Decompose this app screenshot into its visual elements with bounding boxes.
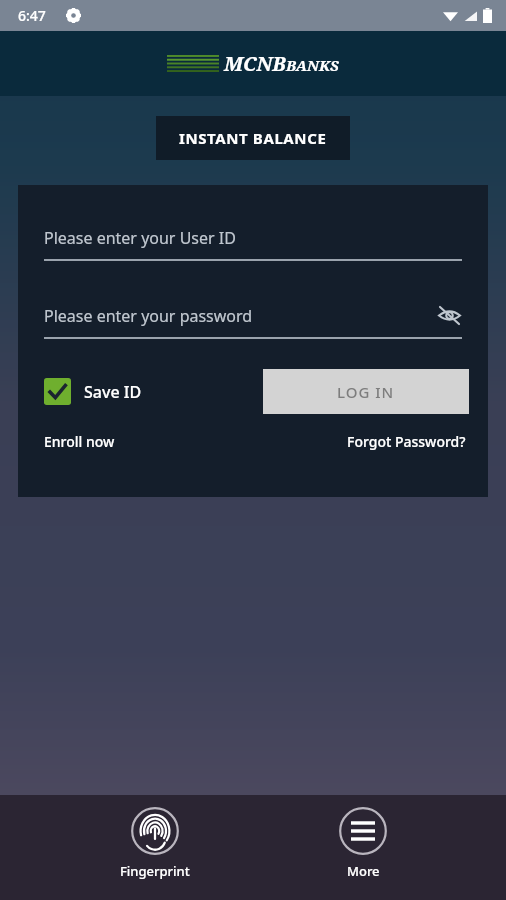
- staticText: Forgot Password?: [347, 432, 466, 451]
- other: More: [339, 807, 387, 855]
- staticText: More: [347, 862, 380, 880]
- staticText: INSTANT BALANCE: [179, 128, 327, 148]
- staticText: MCNB: [224, 50, 286, 77]
- staticText: BANKS: [286, 55, 339, 75]
- other: Fingerprint: [131, 807, 179, 855]
- button[interactable]: Enroll now: [44, 432, 115, 451]
- button[interactable]: INSTANT BALANCE: [156, 116, 350, 160]
- button[interactable]: Please enter your password: [44, 305, 462, 339]
- staticText: Please enter your User ID: [44, 227, 236, 249]
- button[interactable]: LOG IN: [263, 369, 469, 414]
- button[interactable]: Fingerprint: [120, 807, 190, 880]
- staticText: Enroll now: [44, 432, 115, 451]
- staticText: Fingerprint: [120, 862, 190, 880]
- staticText: Save ID: [84, 381, 142, 403]
- button[interactable]: Forgot Password?: [347, 432, 466, 451]
- button[interactable]: Save ID: [44, 378, 142, 405]
- button[interactable]: More: [339, 807, 387, 880]
- staticText: 6:47: [18, 6, 46, 25]
- staticText: Please enter your password: [44, 305, 253, 327]
- staticText: LOG IN: [337, 382, 395, 402]
- button[interactable]: Please enter your User ID: [44, 227, 462, 261]
- other: Show password: [437, 303, 462, 328]
